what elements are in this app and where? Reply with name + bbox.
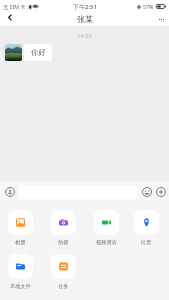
button[interactable]: Voice input <box>1 183 18 200</box>
button[interactable]: 相册 <box>8 210 33 246</box>
staticText: 你好 <box>31 48 46 57</box>
staticText: 张某 <box>77 14 93 24</box>
button[interactable]: Back <box>2 11 18 24</box>
button[interactable]: 你好 <box>24 44 52 61</box>
button[interactable]: More options <box>152 183 169 200</box>
button[interactable]: 位置 <box>134 210 159 246</box>
button[interactable]: 任务 <box>51 254 76 290</box>
button[interactable]: 视频通话 <box>94 210 119 246</box>
staticText: 任务 <box>58 283 69 290</box>
staticText: 相册 <box>15 239 26 246</box>
staticText: 位置 <box>141 239 152 246</box>
staticText: 57% <box>143 3 154 10</box>
button[interactable]: More <box>153 13 169 26</box>
staticText: 拍摄 <box>58 239 69 246</box>
staticText: 视频通话 <box>96 239 117 246</box>
staticText: 下午2:51 <box>73 3 97 11</box>
button[interactable]: Emoji <box>138 183 155 200</box>
button[interactable]: 拍摄 <box>51 210 76 246</box>
staticText: 无 SIM 卡 <box>3 3 26 10</box>
button[interactable]: 本地文件 <box>8 254 33 290</box>
staticText: 14:50 <box>0 32 169 40</box>
staticText: 本地文件 <box>10 283 31 290</box>
